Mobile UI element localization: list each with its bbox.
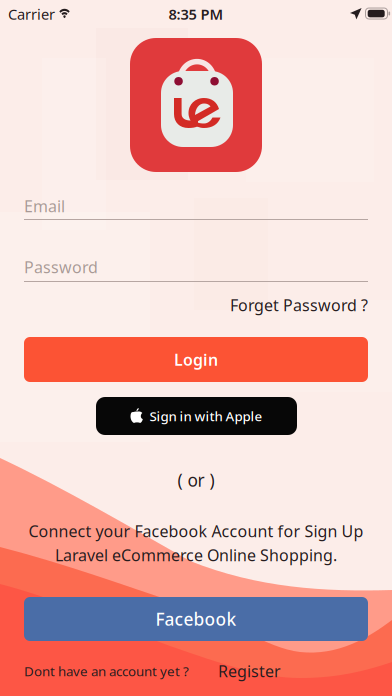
- staticText: 8:35 PM: [168, 4, 223, 24]
- staticText: Laravel eCommerce Online Shopping.: [55, 544, 337, 566]
- staticText: Carrier: [8, 4, 55, 24]
- button[interactable]: Forget Password ?: [188, 294, 368, 316]
- staticText: ( or ): [177, 468, 214, 491]
- staticText: Forget Password ?: [230, 294, 368, 316]
- staticText: Facebook: [155, 607, 236, 630]
- button[interactable]: Register: [218, 661, 298, 681]
- button[interactable]: Facebook: [24, 597, 368, 641]
- staticText: Register: [218, 660, 281, 682]
- staticText: Sign in with Apple: [149, 407, 262, 425]
- staticText: Password: [24, 256, 98, 278]
- staticText: Connect your Facebook Account for Sign U…: [28, 520, 363, 542]
- button[interactable]: Sign in with Apple: [96, 397, 297, 435]
- button[interactable]: Login: [24, 337, 368, 382]
- staticText: Login: [174, 349, 218, 370]
- staticText: Dont have an account yet ?: [24, 662, 189, 680]
- staticText: Email: [24, 195, 65, 217]
